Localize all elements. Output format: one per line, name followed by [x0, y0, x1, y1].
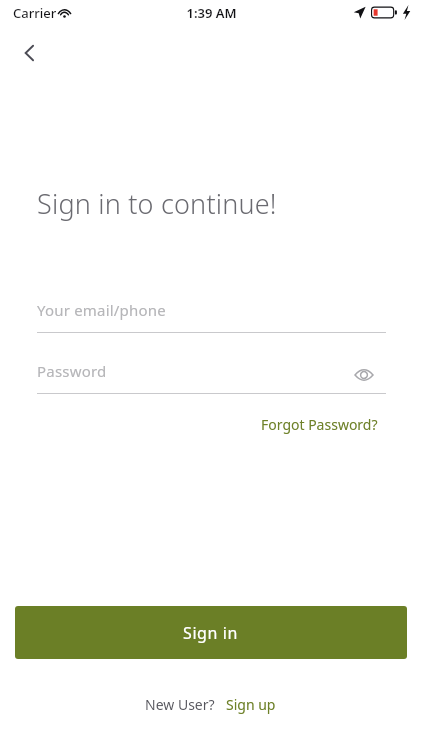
staticText: 1:39 AM — [186, 4, 237, 22]
button[interactable]: Sign up — [224, 693, 278, 716]
staticText: Sign in — [183, 622, 239, 644]
staticText: Password — [37, 361, 107, 381]
staticText: Your email/phone — [37, 300, 166, 320]
button[interactable]: Forgot Password? — [255, 412, 384, 437]
staticText: Carrier — [13, 4, 57, 22]
button[interactable]: Show password — [350, 361, 378, 389]
staticText: Sign up — [226, 695, 276, 714]
button[interactable]: Sign in — [15, 606, 407, 659]
staticText: Forgot Password? — [261, 415, 378, 434]
button[interactable]: Back — [10, 33, 50, 73]
staticText: Sign in to continue! — [37, 185, 277, 222]
staticText: New User? — [145, 695, 215, 714]
